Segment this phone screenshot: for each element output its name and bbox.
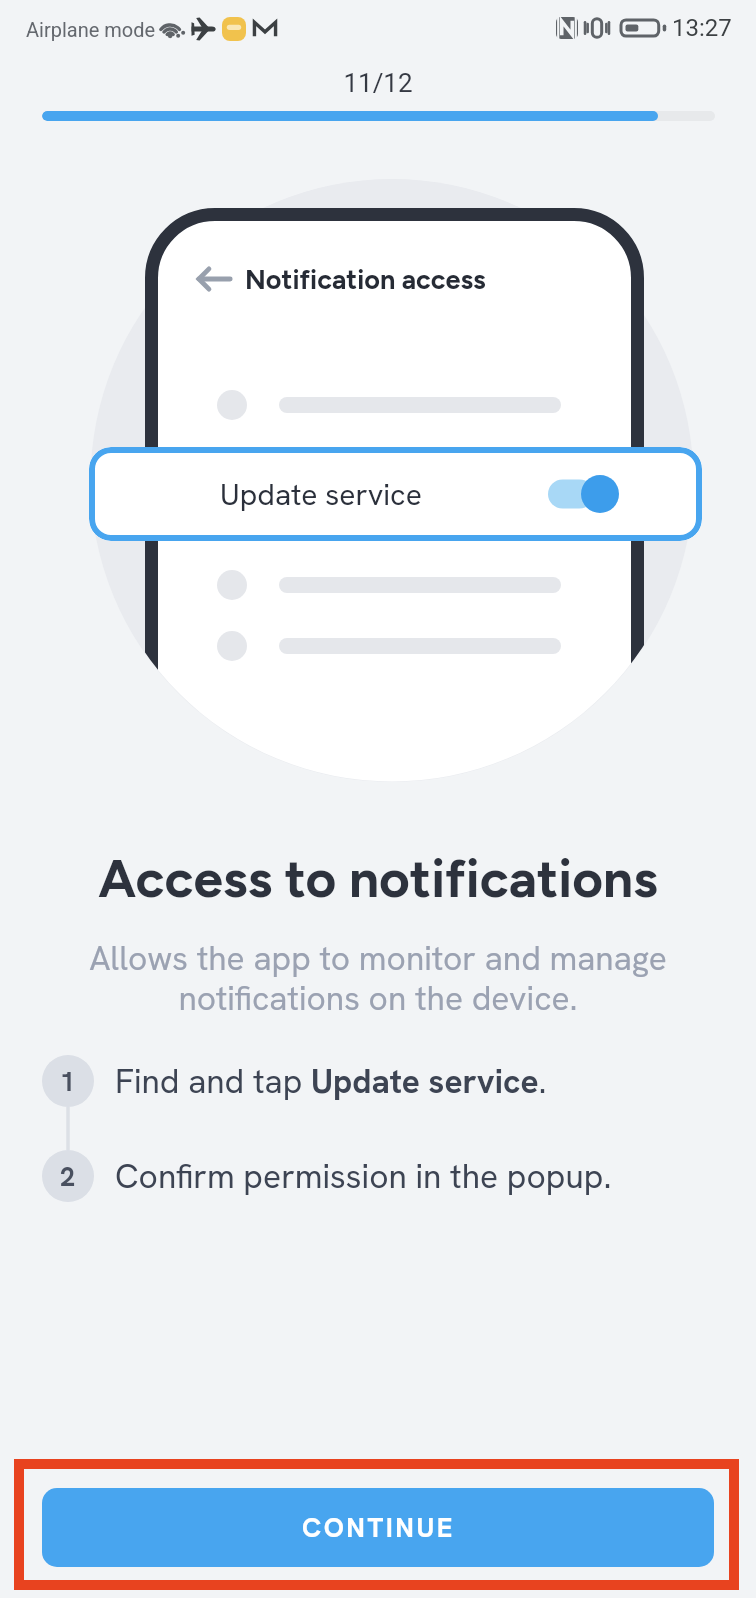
staticText: Access to notifications [0, 847, 756, 911]
staticText: Find and tap Update service. [115, 1059, 547, 1103]
button[interactable]: CONTINUE [42, 1488, 714, 1567]
staticText: Notification access [245, 263, 486, 295]
button[interactable]: Update service [89, 447, 702, 541]
staticText: Confirm permission in the popup. [115, 1154, 612, 1198]
staticText: 11/12 [0, 68, 756, 98]
staticText: 2 [60, 1159, 76, 1194]
staticText: Airplane mode [26, 18, 156, 41]
staticText: Update service [220, 475, 422, 514]
staticText: 1 [60, 1064, 76, 1099]
staticText: 13:27 [672, 14, 732, 42]
staticText: Allows the app to monitor and manage not… [0, 936, 756, 1020]
staticText: CONTINUE [302, 1510, 455, 1545]
button[interactable]: Back [196, 261, 232, 297]
